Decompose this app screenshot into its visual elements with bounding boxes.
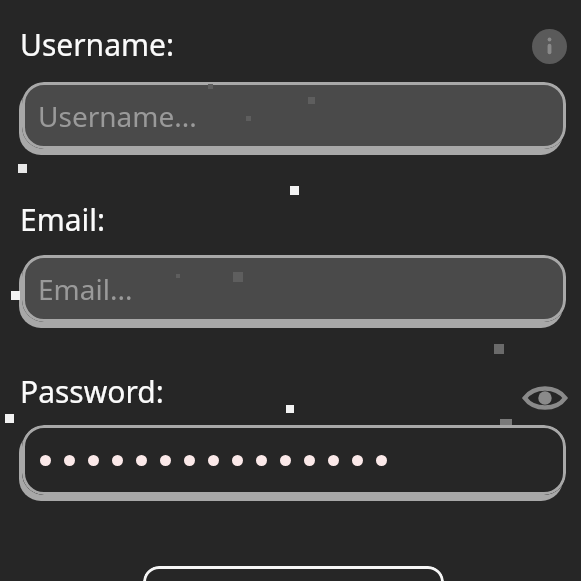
button[interactable] — [22, 425, 566, 495]
button[interactable]: Email... — [22, 255, 566, 322]
staticText: Username... — [38, 97, 197, 135]
staticText: Email... — [38, 270, 133, 308]
staticText: Username: — [20, 24, 174, 65]
staticText: Email: — [20, 199, 106, 240]
button[interactable]: Sign Up — [143, 566, 444, 581]
staticText: Password: — [20, 371, 164, 412]
button[interactable]: Show password — [522, 380, 568, 416]
button[interactable]: Username... — [22, 82, 566, 149]
button[interactable]: Info — [532, 29, 567, 64]
